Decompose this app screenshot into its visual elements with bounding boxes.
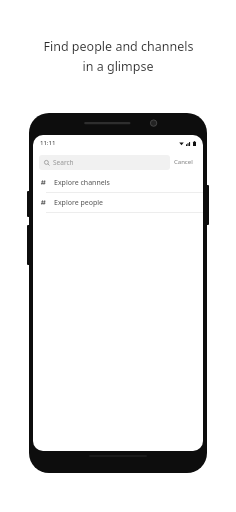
staticText: Explore channels [54, 178, 110, 188]
staticText: Search [53, 158, 74, 167]
button[interactable]: Explore channels [33, 173, 203, 192]
staticText: in a glimpse [82, 58, 154, 75]
button[interactable]: Cancel [170, 155, 197, 169]
button[interactable]: Search [39, 155, 170, 170]
staticText: Cancel [174, 158, 193, 166]
button[interactable]: Explore people [33, 193, 203, 212]
staticText: Find people and channels [43, 38, 194, 55]
staticText: Explore people [54, 198, 104, 208]
staticText: 11:11 [40, 139, 56, 147]
